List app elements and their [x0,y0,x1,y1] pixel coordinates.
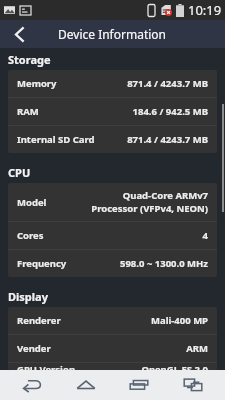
staticText: Quad-Core ARMv7 [122,189,208,202]
staticText: GPU Version [17,363,76,370]
button[interactable]: GPU Version [8,363,217,370]
staticText: RAM [17,105,39,118]
button[interactable]: Back [10,370,54,400]
button[interactable]: Cores [8,222,217,249]
button[interactable]: Frequency [8,250,217,277]
staticText: Memory [17,77,57,90]
staticText: Internal SD Card [17,133,95,146]
staticText: 184.6 / 942.5 MB [132,105,208,118]
staticText: 871.4 / 4243.7 MB [127,133,208,146]
staticText: Storage [8,52,51,67]
staticText: Vender [17,342,51,355]
button[interactable]: Memory [8,70,217,97]
button[interactable]: RAM [8,98,217,125]
button[interactable]: Vender [8,335,217,362]
staticText: Cores [17,229,44,242]
staticText: Mali-400 MP [151,314,208,327]
button[interactable]: Internal SD Card [8,126,217,153]
staticText: OpenGL ES 2.0 [141,363,208,370]
staticText: 10:19 [188,1,222,19]
staticText: 871.4 / 4243.7 MB [127,77,208,90]
staticText: Device Information [58,26,167,42]
staticText: Display [8,289,48,304]
button[interactable]: Model [8,183,217,221]
staticText: Model [17,196,47,209]
staticText: CPU [8,165,31,180]
button[interactable]: Renderer [8,307,217,334]
button[interactable]: Dual window [171,370,215,400]
staticText: Processor (VFPv4, NEON) [91,202,208,215]
staticText: 598.0 ~ 1300.0 MHz [120,257,208,270]
staticText: ARM [186,342,208,355]
staticText: 4 [202,229,208,242]
button[interactable]: Back [0,20,38,48]
button[interactable]: Home [64,370,108,400]
button[interactable]: Recent apps [117,370,161,400]
staticText: Frequency [17,257,67,270]
staticText: Renderer [17,314,61,327]
